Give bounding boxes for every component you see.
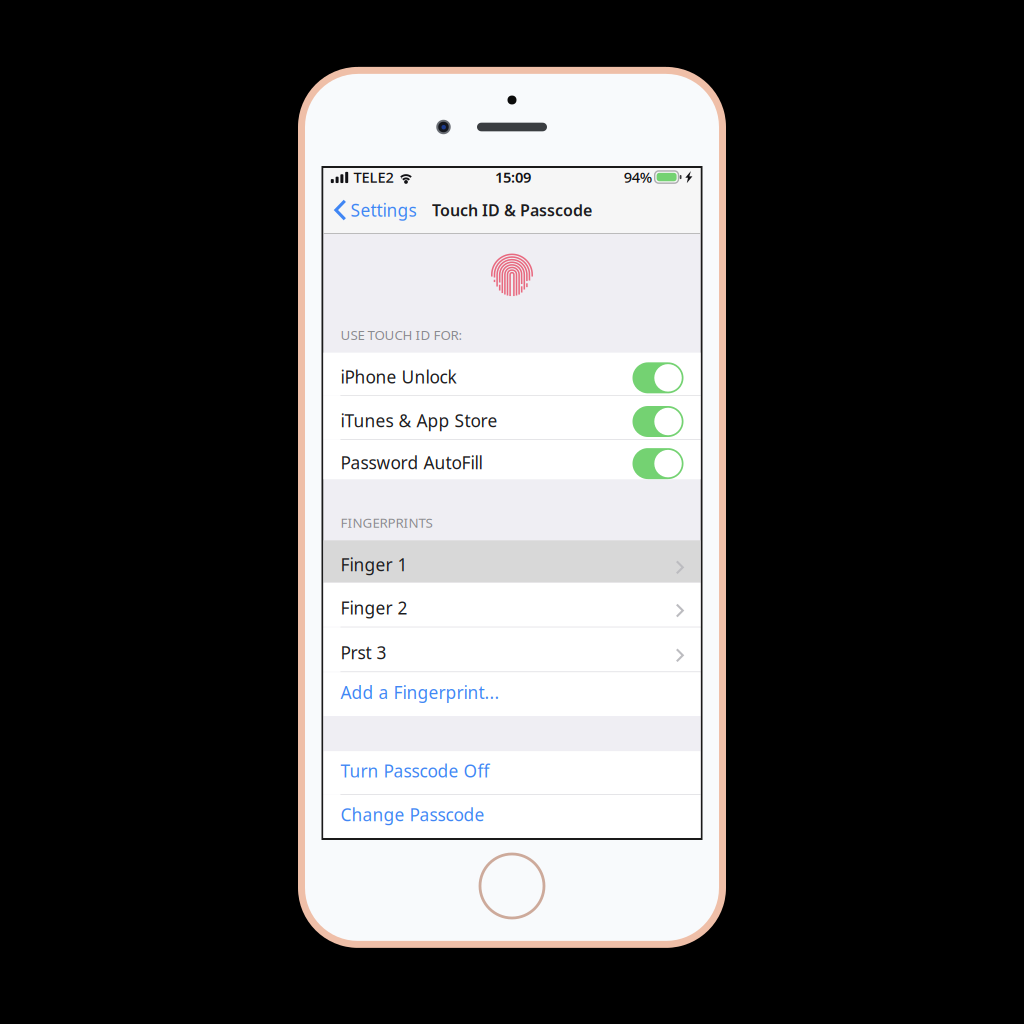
staticText: iPhone Unlock (340, 365, 456, 388)
button[interactable]: Turn Passcode Off (323, 751, 700, 794)
button[interactable]: Finger 2 (323, 583, 700, 627)
staticText: Password AutoFill (340, 451, 482, 474)
staticText: Finger 2 (340, 596, 407, 619)
staticText: Finger 1 (340, 553, 407, 576)
staticText: Change Passcode (340, 803, 484, 826)
staticText: Turn Passcode Off (340, 759, 489, 782)
button[interactable]: Password AutoFill (323, 440, 700, 479)
button[interactable]: Prst 3 (323, 628, 700, 671)
staticText: Touch ID & Passcode (432, 199, 592, 221)
button[interactable]: Finger 1 (323, 540, 700, 583)
staticText: 94% (624, 167, 652, 187)
button[interactable]: Change Passcode (323, 795, 700, 838)
staticText: 15:09 (495, 167, 531, 187)
button[interactable]: Settings (323, 192, 416, 227)
button[interactable]: iPhone Unlock (323, 353, 700, 395)
staticText: iTunes & App Store (340, 409, 497, 432)
staticText: Settings (350, 198, 416, 221)
staticText: Add a Fingerprint... (340, 681, 499, 704)
staticText: FINGERPRINTS (340, 514, 432, 531)
staticText: Prst 3 (340, 641, 386, 664)
button[interactable]: iTunes & App Store (323, 396, 700, 439)
button[interactable]: Add a Fingerprint... (323, 672, 700, 716)
staticText: TELE2 (353, 167, 393, 187)
staticText: USE TOUCH ID FOR: (340, 326, 462, 344)
